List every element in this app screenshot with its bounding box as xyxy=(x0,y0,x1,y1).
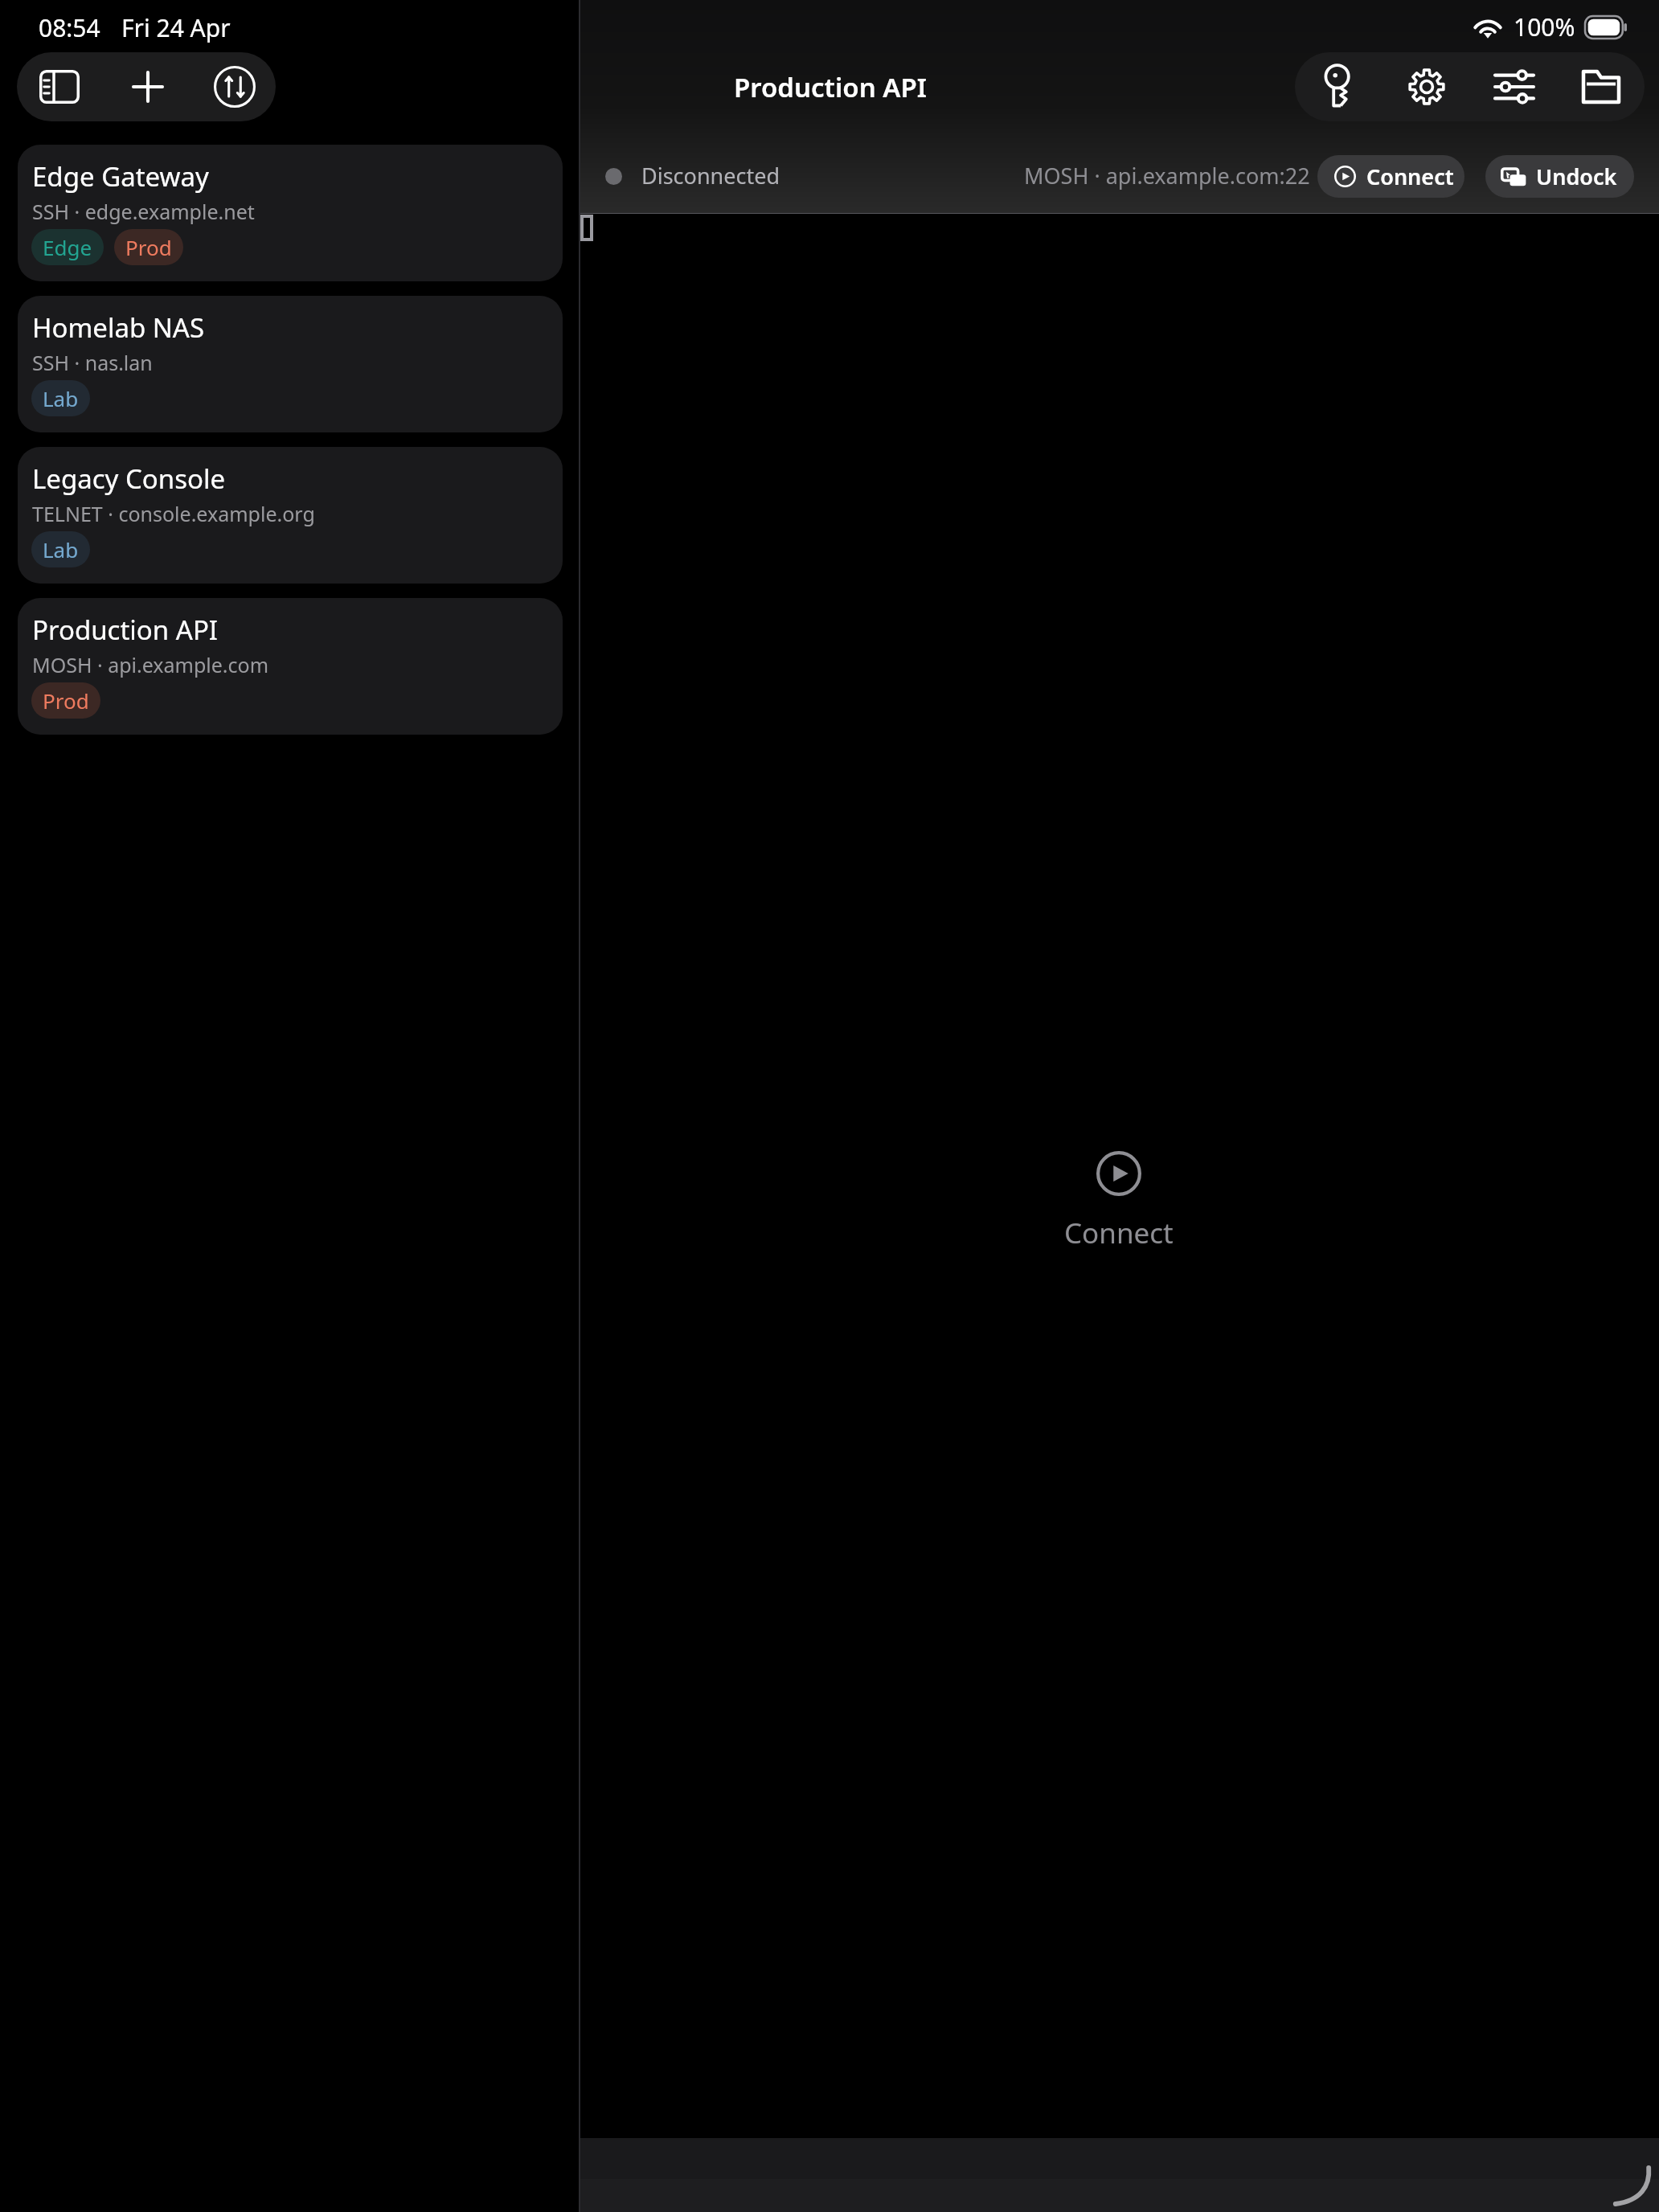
staticText: Production API xyxy=(32,612,219,648)
button[interactable]: Transfer xyxy=(194,52,276,121)
button[interactable]: Files xyxy=(1558,52,1645,121)
staticText: Undock xyxy=(1536,162,1617,191)
button[interactable]: Legacy Console xyxy=(18,447,563,584)
button[interactable]: Toggle sidebar xyxy=(17,52,102,121)
staticText: TELNET · console.example.org xyxy=(32,500,315,527)
staticText: 08:54 xyxy=(39,11,100,44)
staticText: Fri 24 Apr xyxy=(121,11,231,44)
staticText: SSH · nas.lan xyxy=(32,349,153,376)
staticText: Connect xyxy=(1366,162,1454,191)
staticText: 100% xyxy=(1514,10,1575,43)
staticText: Connect xyxy=(1064,1214,1174,1252)
button[interactable]: Production API xyxy=(18,598,563,735)
button[interactable]: Undock xyxy=(1485,155,1634,198)
staticText: Homelab NAS xyxy=(32,309,205,346)
button[interactable]: Homelab NAS xyxy=(18,296,563,432)
staticText: Lab xyxy=(43,384,79,412)
staticText: SSH · edge.example.net xyxy=(32,198,255,225)
staticText: MOSH · api.example.com:22 xyxy=(1024,161,1310,190)
staticText: Prod xyxy=(43,686,89,715)
staticText: Lab xyxy=(43,535,79,563)
button[interactable]: Settings xyxy=(1382,52,1470,121)
staticText: Edge xyxy=(43,233,92,261)
button[interactable]: Connect xyxy=(1317,155,1464,198)
staticText: Edge Gateway xyxy=(32,158,209,195)
button[interactable]: Keys xyxy=(1295,52,1382,121)
staticText: Prod xyxy=(125,233,172,261)
button[interactable]: Edge Gateway xyxy=(18,145,563,281)
staticText: Legacy Console xyxy=(32,461,226,497)
button[interactable]: New connection xyxy=(102,52,194,121)
staticText: Disconnected xyxy=(641,161,780,190)
button[interactable]: Connect xyxy=(1064,1151,1174,1252)
staticText: Production API xyxy=(734,69,928,105)
staticText: MOSH · api.example.com xyxy=(32,651,269,678)
button[interactable]: Tune xyxy=(1470,52,1558,121)
